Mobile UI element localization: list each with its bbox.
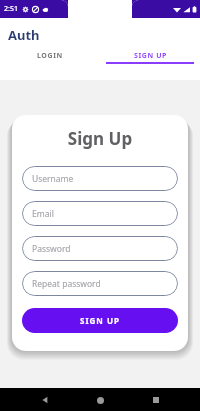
staticText: Username — [32, 173, 74, 185]
staticText: Auth — [8, 26, 40, 44]
staticText: SIGN UP — [134, 51, 167, 61]
staticText: 2:51 — [4, 4, 18, 14]
button[interactable]: Home — [89, 389, 111, 411]
staticText: Sign Up — [22, 127, 178, 150]
button[interactable]: SIGN UP — [22, 308, 178, 333]
button[interactable]: Back — [34, 389, 56, 411]
button[interactable]: Repeat password — [22, 271, 178, 296]
staticText: Email — [32, 208, 54, 220]
button[interactable]: Password — [22, 236, 178, 261]
staticText: Password — [32, 243, 71, 255]
staticText: Repeat password — [32, 278, 101, 290]
button[interactable]: Recent apps — [145, 389, 167, 411]
staticText: LOGIN — [37, 51, 63, 61]
button[interactable]: Username — [22, 166, 178, 191]
button[interactable]: LOGIN — [0, 54, 100, 64]
button[interactable]: SIGN UP — [100, 54, 200, 64]
staticText: SIGN UP — [80, 315, 120, 326]
button[interactable]: Email — [22, 201, 178, 226]
